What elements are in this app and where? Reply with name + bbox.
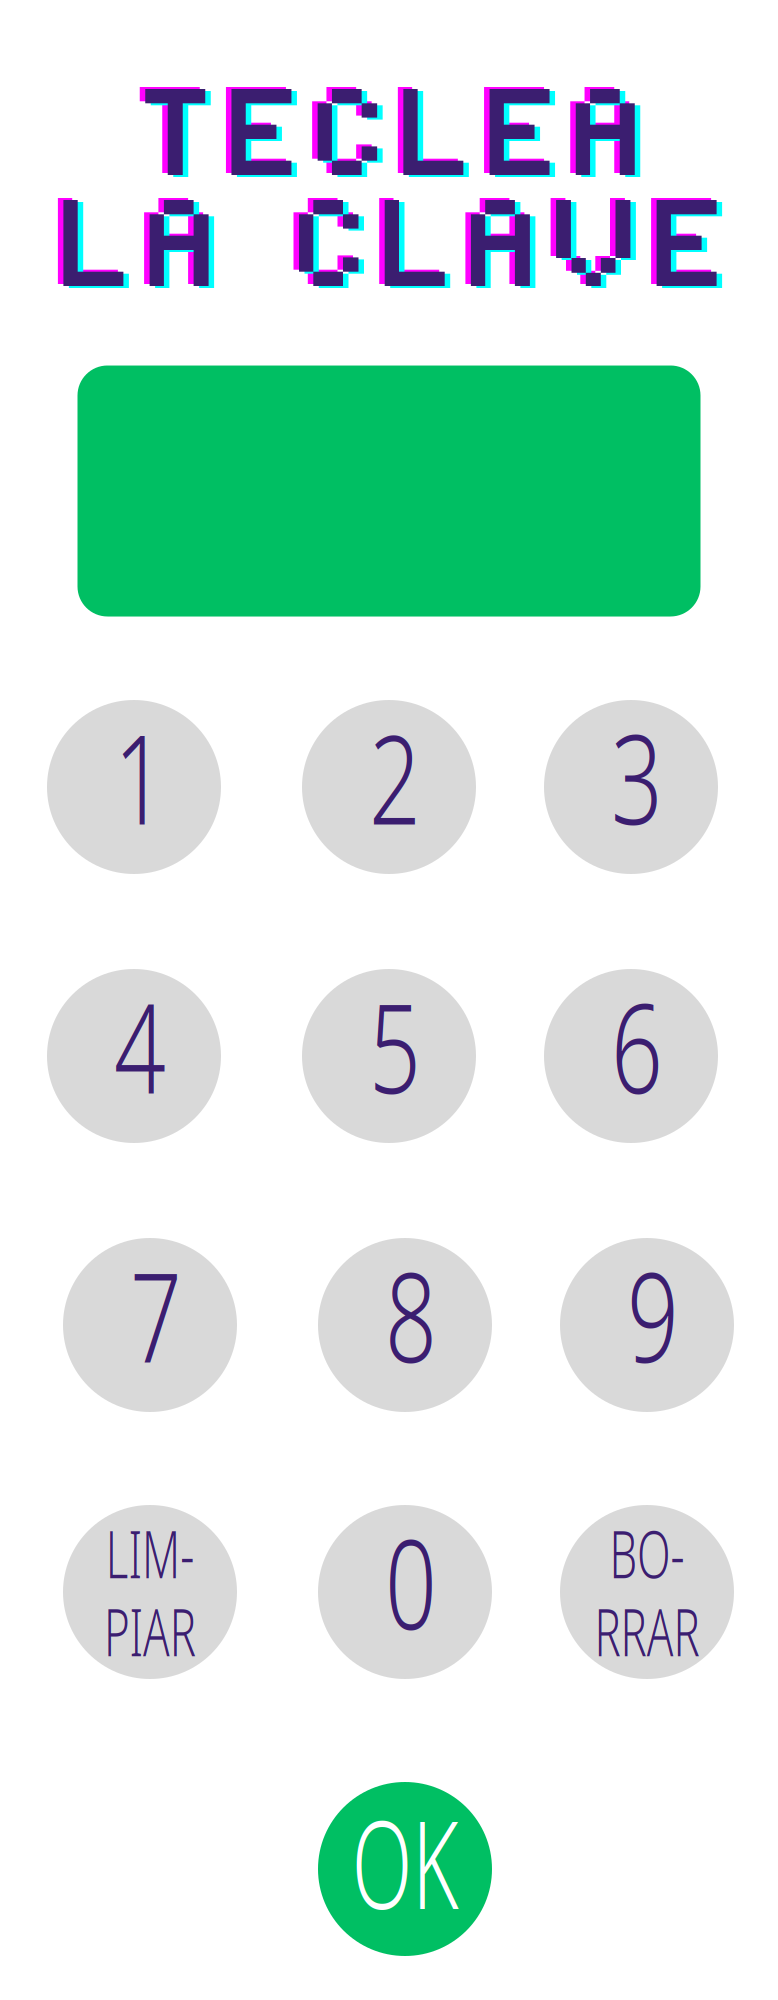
button[interactable]: 5 <box>302 969 476 1143</box>
staticText: PIAR <box>81 1586 218 1675</box>
button[interactable]: 4 <box>47 969 221 1143</box>
button[interactable]: 1 <box>47 700 221 874</box>
staticText: 2 <box>360 693 430 861</box>
staticText: 5 <box>360 962 430 1130</box>
button[interactable]: LIM- <box>63 1505 237 1679</box>
button[interactable]: 0 <box>318 1505 492 1679</box>
staticText: 6 <box>602 962 672 1130</box>
staticText: 3 <box>602 693 672 861</box>
button[interactable]: 8 <box>318 1238 492 1412</box>
staticText: 7 <box>121 1231 191 1399</box>
staticText: 8 <box>376 1231 446 1399</box>
staticText: OK <box>323 1779 487 1945</box>
button[interactable]: 2 <box>302 700 476 874</box>
staticText: 4 <box>105 962 175 1130</box>
button[interactable]: 6 <box>544 969 718 1143</box>
button[interactable]: OK <box>318 1782 492 1956</box>
staticText: LIM- <box>84 1508 216 1597</box>
staticText: RRAR <box>568 1586 725 1675</box>
button[interactable]: 7 <box>63 1238 237 1412</box>
staticText: 1 <box>105 693 175 861</box>
staticText: 9 <box>618 1231 688 1399</box>
button[interactable]: 3 <box>544 700 718 874</box>
staticText: 0 <box>376 1498 446 1666</box>
staticText: BO- <box>591 1508 703 1597</box>
button[interactable]: BO- <box>560 1505 734 1679</box>
button[interactable]: 9 <box>560 1238 734 1412</box>
